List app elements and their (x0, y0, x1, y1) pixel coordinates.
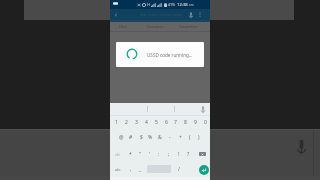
staticText: ; (168, 151, 170, 158)
button[interactable]: 2 (121, 114, 131, 130)
staticText: 0 (204, 119, 207, 126)
staticText: / (178, 166, 180, 173)
button[interactable]: ! (174, 146, 184, 162)
staticText: 6 (165, 119, 168, 126)
staticText: 2 (125, 119, 128, 126)
button[interactable]: " (135, 146, 145, 162)
staticText: Dial (119, 24, 127, 30)
button[interactable]: _ (136, 161, 145, 177)
button[interactable]: 3 (131, 114, 141, 130)
staticText: am (189, 3, 194, 7)
staticText: ) (198, 134, 200, 141)
button[interactable]: Backspace (195, 146, 210, 162)
button[interactable]: ' (145, 146, 155, 162)
button[interactable]: 1 (111, 114, 121, 130)
button[interactable]: + (175, 129, 185, 145)
staticText: _ (139, 166, 142, 173)
staticText: H (147, 2, 150, 7)
staticText: : (158, 151, 160, 158)
staticText: " (139, 151, 142, 158)
button[interactable]: , (126, 161, 135, 177)
button[interactable]: Voice search (293, 138, 310, 155)
staticText: , (130, 166, 132, 173)
button[interactable]: * (125, 146, 135, 162)
button[interactable]: More options (196, 9, 204, 20)
staticText: 12:38 (177, 2, 188, 8)
button[interactable]: 9 (190, 114, 200, 130)
button[interactable]: Enter (199, 165, 209, 175)
staticText: Contacts (146, 24, 164, 30)
staticText: * (129, 151, 132, 158)
staticText: ' (149, 151, 151, 158)
button[interactable]: 4 (141, 114, 151, 130)
staticText: $ (140, 134, 143, 141)
staticText: 8 (184, 119, 187, 126)
staticText: abc (115, 167, 121, 171)
button[interactable]: % (145, 129, 155, 145)
button[interactable]: ( (185, 129, 195, 145)
button[interactable]: 8 (180, 114, 190, 130)
staticText: Favorites (179, 24, 197, 30)
staticText: ! (178, 151, 180, 158)
button[interactable]: =\< (110, 146, 125, 162)
staticText: 5 (155, 119, 158, 126)
button[interactable]: 0 (200, 114, 210, 130)
button[interactable]: # (126, 129, 136, 145)
button[interactable]: ; (164, 146, 174, 162)
button[interactable]: 7 (170, 114, 180, 130)
button[interactable]: abc (110, 161, 125, 177)
button[interactable]: / (174, 161, 183, 177)
staticText: + (179, 134, 182, 141)
button[interactable]: Voice input (187, 9, 195, 20)
staticText: Search name or phone number (140, 13, 183, 17)
staticText: 1 (115, 119, 118, 126)
staticText: ( (189, 134, 191, 141)
button[interactable]: $ (136, 129, 146, 145)
button[interactable]: @ (116, 129, 126, 145)
button[interactable]: Favorites (173, 22, 203, 32)
staticText: USSD code running... (147, 52, 193, 58)
button[interactable]: Voice typing (199, 106, 206, 113)
staticText: 4 (145, 119, 148, 126)
button[interactable]: ) (194, 129, 204, 145)
button[interactable]: - (165, 129, 175, 145)
button[interactable]: ? (183, 146, 193, 162)
staticText: % (148, 134, 153, 141)
button[interactable]: 6 (161, 114, 171, 130)
staticText: =\< (115, 152, 120, 156)
staticText: & (158, 134, 162, 141)
button[interactable]: & (155, 129, 165, 145)
staticText: ? (187, 151, 190, 158)
button[interactable]: USSD code running... (116, 42, 204, 67)
staticText: # (129, 134, 133, 141)
staticText: 9 (194, 119, 197, 126)
button[interactable]: Dial (112, 22, 134, 32)
staticText: - (169, 134, 171, 141)
button[interactable]: 5 (151, 114, 161, 130)
button[interactable]: Contacts (140, 22, 170, 32)
staticText: 41% (168, 2, 176, 7)
staticText: 3 (135, 119, 138, 126)
staticText: @ (119, 134, 124, 141)
button[interactable]: : (154, 146, 164, 162)
staticText: 7 (174, 119, 177, 126)
button[interactable]: Back (111, 9, 121, 20)
